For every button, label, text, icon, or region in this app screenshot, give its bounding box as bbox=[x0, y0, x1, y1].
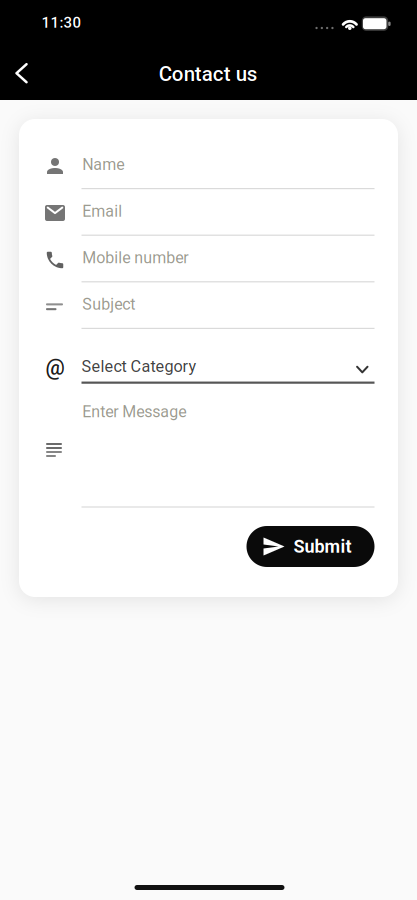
staticText: Select Category bbox=[81, 357, 196, 376]
staticText: Name bbox=[82, 155, 124, 174]
textField[interactable]: Mobile number bbox=[82, 248, 374, 267]
button[interactable]: Back bbox=[4, 53, 38, 93]
staticText: Enter Message bbox=[82, 402, 186, 421]
staticText: Submit bbox=[293, 536, 351, 557]
textField[interactable]: Enter Message bbox=[82, 402, 374, 421]
textField[interactable]: Email bbox=[82, 202, 374, 221]
staticText: @ bbox=[45, 355, 64, 380]
button[interactable]: Submit bbox=[246, 526, 374, 567]
button[interactable]: Select Category bbox=[81, 353, 374, 384]
textField[interactable]: Subject bbox=[82, 295, 374, 314]
textField[interactable]: Name bbox=[82, 155, 374, 174]
staticText: Mobile number bbox=[82, 248, 188, 267]
staticText: Contact us bbox=[159, 62, 258, 86]
staticText: Subject bbox=[82, 295, 135, 314]
staticText: 11:30 bbox=[41, 14, 81, 31]
staticText: Email bbox=[82, 202, 122, 221]
